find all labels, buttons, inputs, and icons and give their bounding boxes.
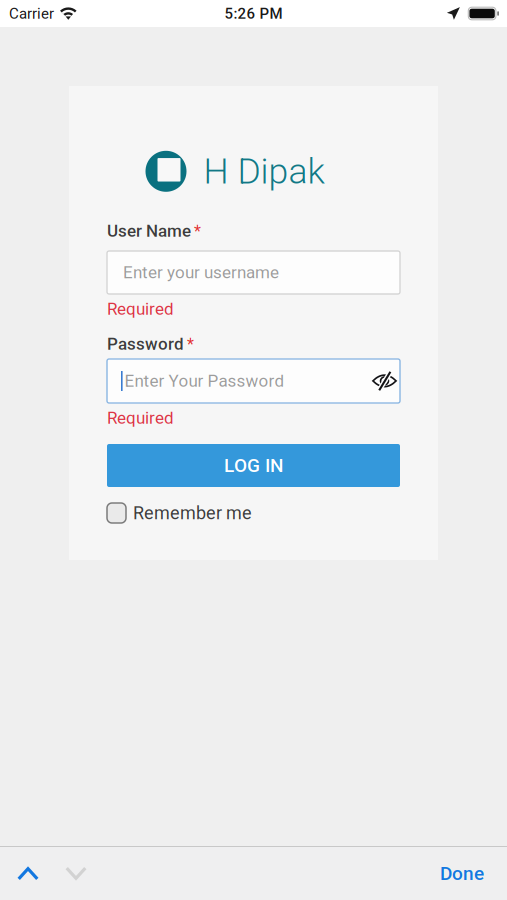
staticText: Done — [440, 862, 484, 885]
staticText: Required — [107, 299, 174, 319]
staticText: Required — [107, 408, 174, 428]
staticText: LOG IN — [224, 454, 283, 477]
staticText: Remember me — [133, 502, 252, 524]
button[interactable]: Previous field — [4, 847, 52, 899]
staticText: Password — [107, 334, 184, 354]
staticText: 5:26 PM — [224, 5, 282, 22]
staticText: * — [194, 222, 201, 241]
staticText: * — [187, 335, 194, 354]
button[interactable]: Next field — [52, 847, 100, 899]
staticText: H Dipak — [203, 150, 324, 192]
staticText: Carrier — [9, 5, 54, 22]
button[interactable]: Done — [424, 847, 500, 899]
staticText: Enter Your Password — [125, 371, 285, 391]
staticText: Enter your username — [123, 262, 279, 282]
button[interactable]: Remember me — [107, 503, 400, 523]
button[interactable]: LOG IN — [107, 444, 400, 487]
staticText: User Name — [107, 221, 191, 241]
